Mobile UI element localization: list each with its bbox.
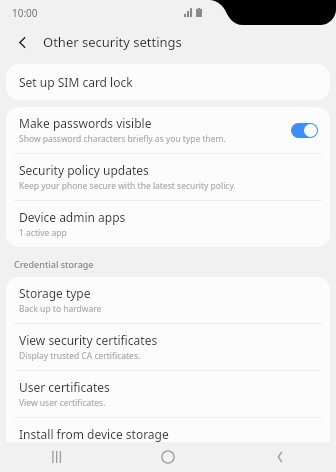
button[interactable]: Make passwords visible xyxy=(291,123,318,138)
staticText: Display trusted CA certificates. xyxy=(19,350,141,362)
staticText: Show password characters briefly as you … xyxy=(19,133,226,145)
button[interactable]: Set up SIM card lock xyxy=(6,64,330,100)
button[interactable]: Install from device storage xyxy=(6,418,330,442)
button[interactable]: User certificates xyxy=(6,371,330,417)
staticText: 10:00 xyxy=(12,6,38,20)
staticText: View security certificates xyxy=(19,332,158,348)
button[interactable]: Home xyxy=(112,442,224,472)
staticText: Storage type xyxy=(19,285,91,301)
staticText: Other security settings xyxy=(43,33,182,51)
staticText: Make passwords visible xyxy=(19,115,152,131)
staticText: Set up SIM card lock xyxy=(19,74,133,90)
button[interactable]: Security policy updates xyxy=(6,154,330,200)
button[interactable]: Back xyxy=(224,442,336,472)
staticText: Keep your phone secure with the latest s… xyxy=(19,180,236,192)
staticText: 1 active app xyxy=(19,227,67,239)
button[interactable]: Make passwords visible xyxy=(6,107,330,153)
button[interactable]: Recent apps xyxy=(0,442,112,472)
staticText: Install from device storage xyxy=(19,426,169,442)
staticText: Security policy updates xyxy=(19,162,149,178)
staticText: View user certificates. xyxy=(19,397,106,409)
staticText: User certificates xyxy=(19,379,110,395)
button[interactable]: Back xyxy=(10,30,34,54)
staticText: Credential storage xyxy=(14,258,94,270)
staticText: Device admin apps xyxy=(19,209,126,225)
button[interactable]: Storage type xyxy=(6,277,330,323)
button[interactable]: View security certificates xyxy=(6,324,330,370)
staticText: Back up to hardware xyxy=(19,303,102,315)
button[interactable]: Device admin apps xyxy=(6,201,330,247)
